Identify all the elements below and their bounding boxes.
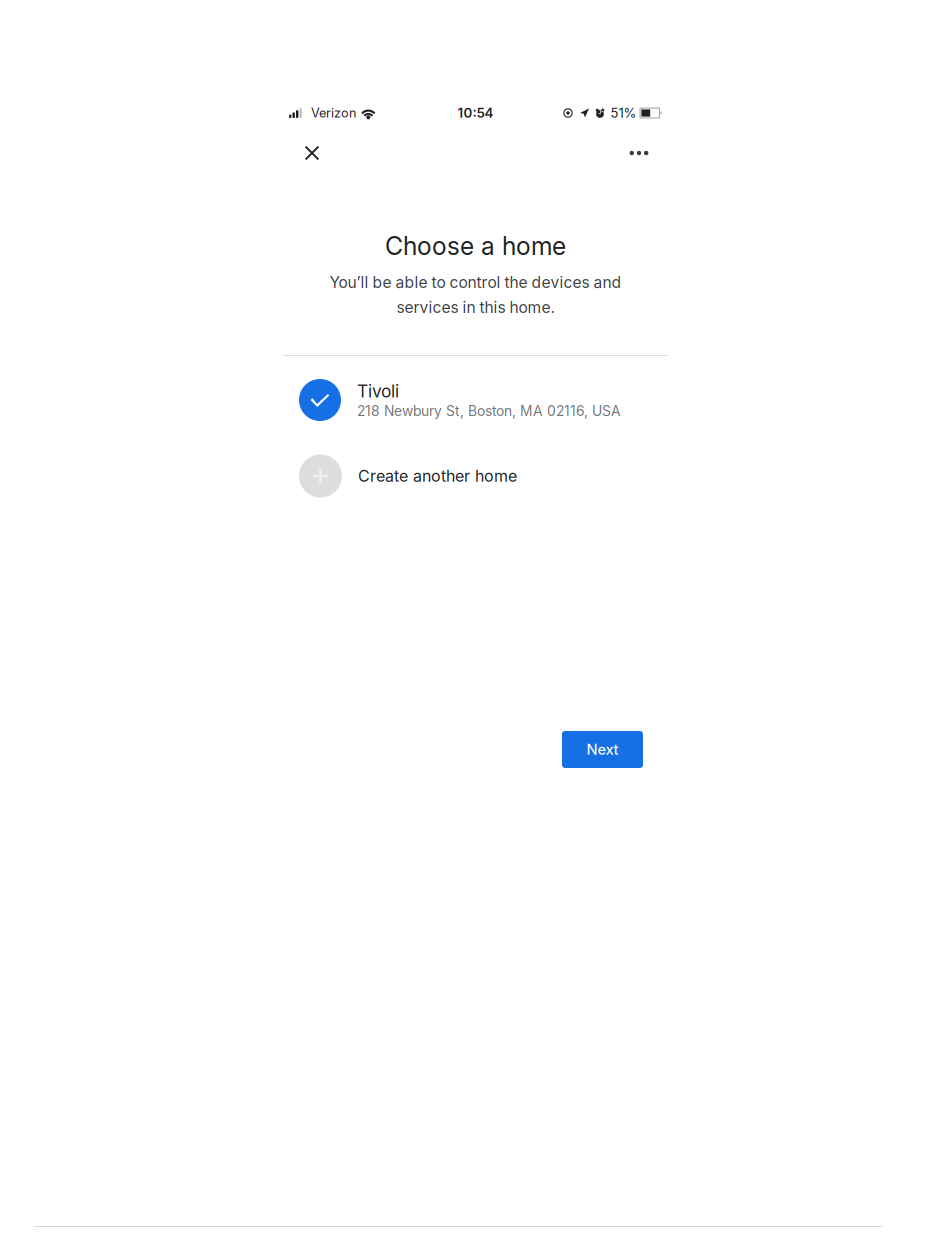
staticText: Verizon	[311, 105, 356, 121]
staticText: 218 Newbury St, Boston, MA 02116, USA	[357, 403, 621, 419]
staticText: 10:54	[457, 105, 493, 121]
button[interactable]: Tivoli	[299, 377, 644, 423]
button[interactable]: Close	[292, 133, 332, 173]
staticText: Create another home	[358, 466, 517, 486]
staticText: Choose a home	[385, 231, 566, 261]
staticText: Next	[586, 741, 618, 758]
staticText: You’ll be able to control the devices an…	[329, 273, 621, 292]
staticText: 51%	[611, 105, 637, 121]
staticText: services in this home.	[396, 298, 554, 317]
button[interactable]: More options	[619, 133, 659, 173]
button[interactable]: Next	[562, 731, 643, 768]
staticText: Tivoli	[357, 381, 399, 402]
button[interactable]: Create another home	[299, 454, 644, 498]
